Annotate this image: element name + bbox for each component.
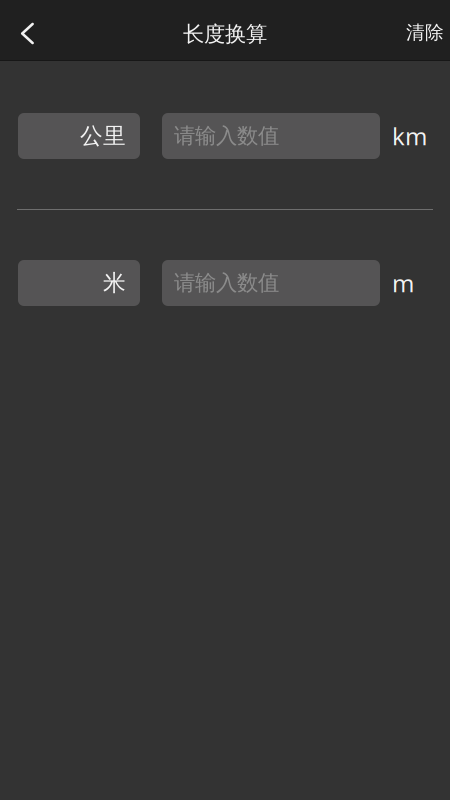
button[interactable]: 请输入数值 bbox=[162, 260, 380, 306]
button[interactable]: 公里 bbox=[18, 113, 140, 159]
staticText: 米 bbox=[103, 269, 126, 297]
staticText: 请输入数值 bbox=[174, 123, 279, 149]
button[interactable]: 清除 bbox=[392, 0, 450, 60]
button[interactable]: 米 bbox=[18, 260, 140, 306]
button[interactable]: Back bbox=[0, 0, 50, 60]
staticText: 长度换算 bbox=[183, 21, 267, 47]
button[interactable]: 请输入数值 bbox=[162, 113, 380, 159]
staticText: 公里 bbox=[80, 122, 126, 150]
staticText: 请输入数值 bbox=[174, 270, 279, 296]
staticText: m bbox=[392, 267, 414, 299]
staticText: 清除 bbox=[406, 21, 444, 44]
staticText: km bbox=[392, 120, 427, 152]
